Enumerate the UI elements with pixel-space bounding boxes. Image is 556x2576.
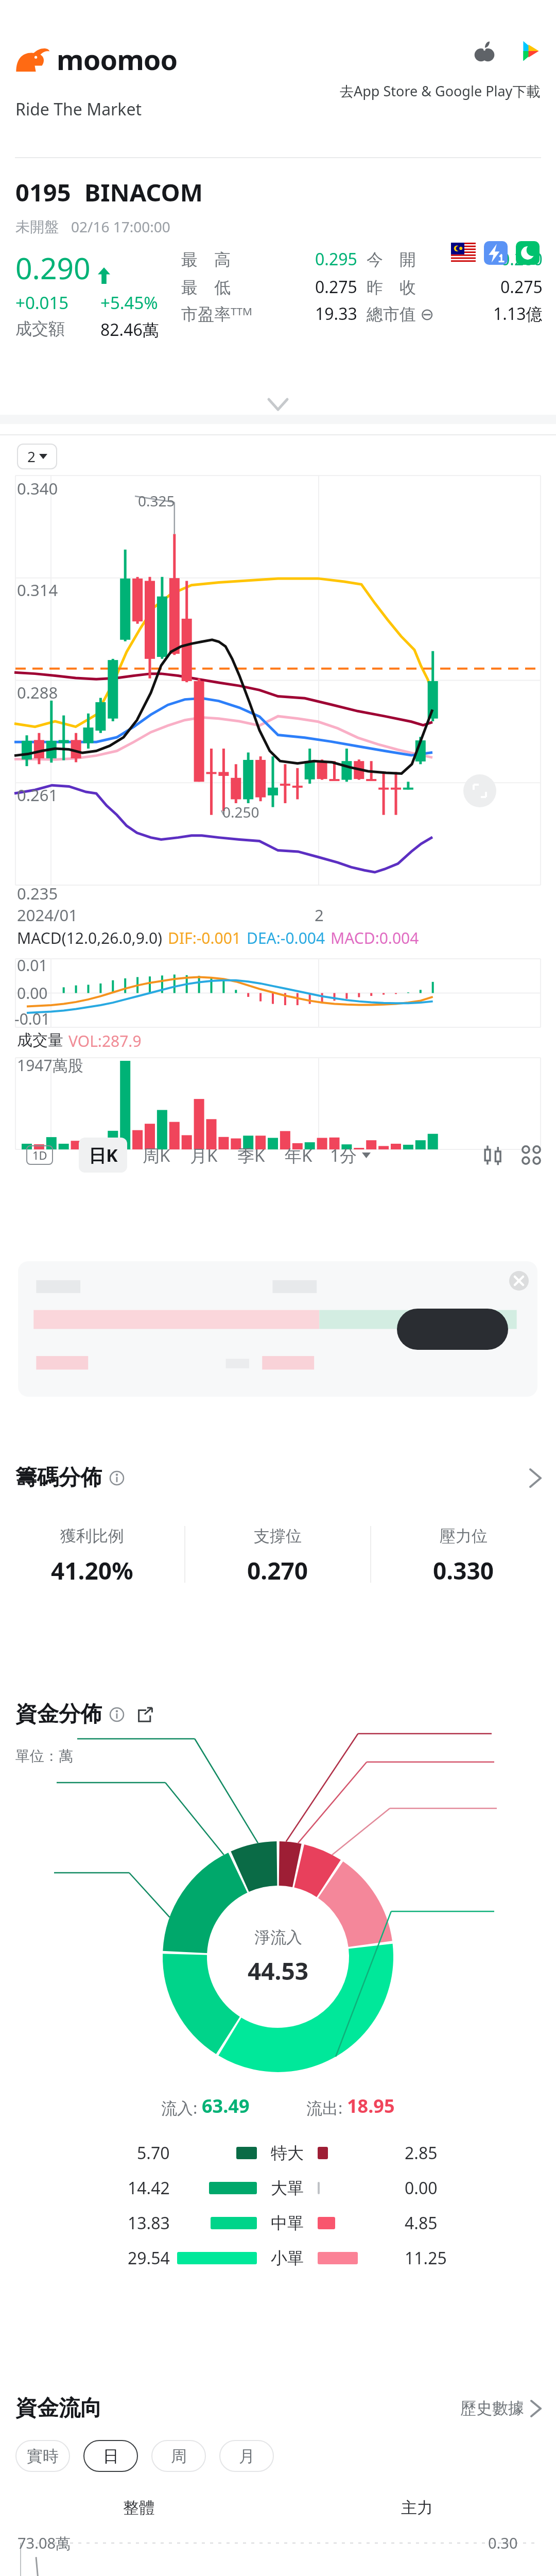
button[interactable]: Level 1 quotes bbox=[484, 241, 508, 265]
staticText: 5.70 bbox=[137, 2142, 170, 2164]
staticText: 去App Store & Google Play下載 bbox=[340, 81, 541, 100]
staticText: 0.290 bbox=[15, 248, 91, 288]
staticText: 0.235 bbox=[17, 883, 58, 904]
button[interactable]: 籌碼分佈 bbox=[15, 1464, 541, 1492]
button[interactable]: Share bbox=[137, 1707, 152, 1722]
staticText: 最 高 bbox=[181, 248, 231, 270]
staticText: 4.85 bbox=[405, 2212, 438, 2234]
staticText: 19.33 bbox=[315, 302, 357, 325]
staticText: 壓力位 bbox=[440, 1526, 488, 1546]
staticText: 未開盤 bbox=[15, 218, 59, 236]
button[interactable]: Indicators bbox=[482, 1144, 505, 1166]
staticText: 0.250 bbox=[222, 802, 259, 822]
button[interactable]: 1分 bbox=[325, 1139, 376, 1172]
staticText: 歷史數據 bbox=[460, 2398, 524, 2418]
button[interactable]: Google Play bbox=[519, 40, 541, 62]
button[interactable]: Night mode bbox=[516, 241, 540, 265]
staticText: 最 低 bbox=[181, 276, 231, 298]
staticText: 整體 bbox=[123, 2498, 155, 2518]
button[interactable]: 周K bbox=[134, 1139, 179, 1172]
staticText: 1947萬股 bbox=[17, 1055, 83, 1076]
staticText: 流出: bbox=[306, 2097, 347, 2119]
staticText: 流入: bbox=[161, 2097, 202, 2119]
staticText: 0.275 bbox=[500, 276, 543, 298]
staticText: 小單 bbox=[271, 2248, 304, 2268]
button[interactable]: Close bbox=[509, 1271, 529, 1291]
button[interactable]: 月 bbox=[219, 2440, 274, 2472]
staticText: 0.340 bbox=[17, 478, 58, 499]
button[interactable] bbox=[397, 1309, 508, 1350]
staticText: 總市值 ⊖ bbox=[367, 302, 435, 325]
button[interactable]: 年K bbox=[276, 1139, 321, 1172]
staticText: 63.49 bbox=[202, 2093, 250, 2119]
staticText: 大單 bbox=[271, 2178, 304, 2198]
staticText: 29.54 bbox=[128, 2247, 170, 2269]
staticText: 2.85 bbox=[405, 2142, 438, 2164]
staticText: 特大 bbox=[271, 2143, 304, 2163]
button[interactable]: 2 bbox=[17, 444, 57, 469]
staticText: +0.015 bbox=[15, 291, 100, 314]
staticText: DEA:-0.004 bbox=[247, 927, 325, 948]
staticText: 02/16 17:00:00 bbox=[71, 217, 170, 236]
staticText: 成交額 bbox=[15, 318, 100, 339]
button[interactable]: App Store bbox=[474, 40, 495, 62]
staticText: 0195 bbox=[15, 176, 71, 209]
staticText: 1.13億 bbox=[493, 302, 543, 325]
staticText: 日 bbox=[103, 2446, 119, 2466]
staticText: 實時 bbox=[27, 2446, 59, 2466]
staticText: 年K bbox=[285, 1144, 312, 1167]
button[interactable]: 周 bbox=[151, 2440, 206, 2472]
staticText: 支撐位 bbox=[254, 1526, 302, 1546]
staticText: 資金分佈 bbox=[15, 1701, 102, 1728]
staticText: +5.45% bbox=[100, 291, 158, 314]
staticText: 季K bbox=[237, 1144, 265, 1167]
staticText: 單位：萬 bbox=[15, 1747, 73, 1765]
staticText: 月K bbox=[190, 1144, 218, 1167]
staticText: 73.08萬 bbox=[18, 2533, 71, 2553]
button[interactable]: 日 bbox=[83, 2440, 138, 2472]
staticText: moomoo bbox=[57, 40, 178, 78]
staticText: 0.00 bbox=[405, 2177, 438, 2199]
staticText: 籌碼分佈 bbox=[15, 1464, 102, 1492]
staticText: -0.01 bbox=[14, 1008, 50, 1029]
staticText: 淨流入 bbox=[254, 1927, 302, 1947]
staticText: DIF:-0.001 bbox=[168, 927, 241, 948]
staticText: 周K bbox=[143, 1144, 170, 1167]
staticText: 44.53 bbox=[248, 1955, 309, 1987]
staticText: VOL:287.9 bbox=[68, 1030, 142, 1052]
staticText: 82.46萬 bbox=[100, 318, 159, 341]
staticText: MACD:0.004 bbox=[331, 927, 419, 948]
button[interactable]: More tools bbox=[520, 1144, 543, 1166]
staticText: Ride The Market bbox=[15, 98, 142, 121]
button[interactable]: 實時 bbox=[15, 2440, 70, 2472]
button[interactable]: 月K bbox=[182, 1139, 226, 1172]
staticText: 中單 bbox=[271, 2213, 304, 2233]
staticText: 月 bbox=[239, 2446, 255, 2466]
staticText: 0.275 bbox=[315, 276, 357, 298]
staticText: 0.295 bbox=[315, 248, 357, 270]
staticText: 獲利比例 bbox=[60, 1526, 124, 1546]
staticText: 1D bbox=[32, 1147, 47, 1163]
staticText: 13.83 bbox=[128, 2212, 170, 2234]
staticText: 41.20% bbox=[51, 1554, 133, 1587]
staticText: 0.325 bbox=[138, 491, 175, 511]
staticText: 2 bbox=[27, 447, 36, 466]
staticText: BINACOM bbox=[84, 176, 203, 209]
staticText: 2 bbox=[315, 904, 324, 926]
button[interactable]: 季K bbox=[229, 1139, 273, 1172]
button[interactable]: 歷史數據 bbox=[460, 2398, 541, 2418]
staticText: 昨 收 bbox=[367, 276, 416, 298]
button[interactable]: 日K bbox=[79, 1138, 127, 1173]
staticText: 成交量 bbox=[17, 1030, 63, 1050]
staticText: 0.30 bbox=[488, 2533, 518, 2553]
button[interactable]: 1D bbox=[26, 1145, 53, 1165]
staticText: 14.42 bbox=[128, 2177, 170, 2199]
staticText: 18.95 bbox=[347, 2093, 395, 2119]
button[interactable]: Expand bbox=[269, 399, 287, 410]
staticText: 資金流向 bbox=[15, 2395, 102, 2422]
staticText: 11.25 bbox=[405, 2247, 447, 2269]
staticText: MACD(12.0,26.0,9.0) bbox=[17, 927, 163, 948]
staticText: 0.280 bbox=[500, 248, 543, 270]
staticText: 0.00 bbox=[17, 982, 48, 1004]
button[interactable]: Full screen bbox=[463, 774, 496, 807]
